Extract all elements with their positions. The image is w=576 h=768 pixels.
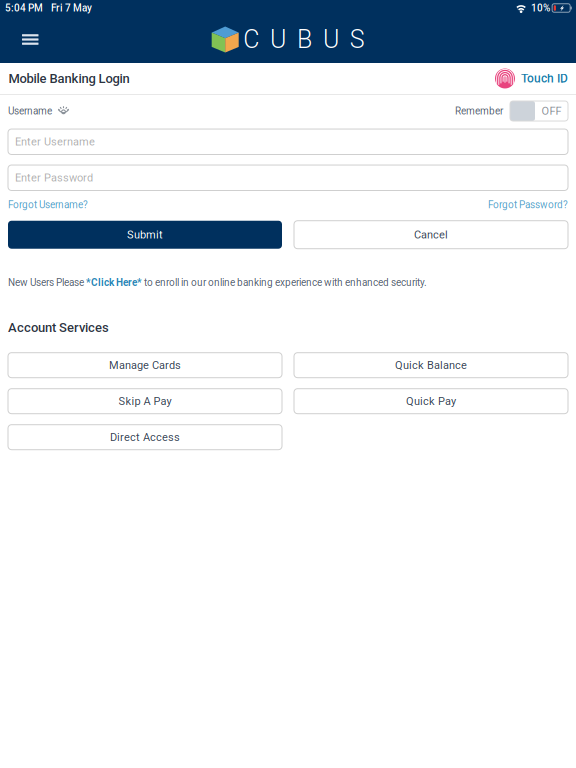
staticText: Account Services <box>8 320 109 335</box>
button[interactable]: Touch ID <box>495 65 568 91</box>
button[interactable]: Manage Cards <box>8 353 282 378</box>
staticText: U <box>323 25 339 54</box>
staticText: Mobile Banking Login <box>8 71 129 86</box>
staticText: Remember <box>455 105 503 117</box>
staticText: Cancel <box>414 228 448 241</box>
staticText: Direct Access <box>110 431 180 444</box>
button[interactable]: Quick Balance <box>294 353 568 378</box>
staticText: Quick Balance <box>395 359 467 372</box>
staticText: Quick Pay <box>406 395 456 408</box>
staticText: C <box>243 25 259 54</box>
staticText: Submit <box>127 228 163 241</box>
staticText: OFF <box>541 105 561 117</box>
button[interactable]: Enter Password <box>8 165 568 190</box>
button[interactable]: Submit <box>8 221 282 249</box>
staticText: Touch ID <box>521 71 568 86</box>
staticText: Forgot Username? <box>8 199 88 211</box>
staticText: 5:04 PM <box>5 2 43 14</box>
staticText: Manage Cards <box>109 359 181 372</box>
button[interactable]: Cancel <box>294 221 568 249</box>
staticText: Enter Password <box>15 171 93 184</box>
staticText: New Users Please <box>8 277 86 288</box>
button[interactable]: Forgot Username? <box>8 199 88 211</box>
button[interactable]: *Click Here* <box>86 277 142 288</box>
staticText: Fri 7 May <box>51 2 92 14</box>
button[interactable]: Forgot Password? <box>488 199 568 211</box>
button[interactable]: Quick Pay <box>294 389 568 414</box>
button[interactable]: Direct Access <box>8 425 282 450</box>
staticText: B <box>297 25 312 54</box>
staticText: *Click Here* <box>86 277 142 288</box>
staticText: U <box>270 25 286 54</box>
button[interactable]: Enter Username <box>8 129 568 154</box>
staticText: S <box>350 25 365 54</box>
staticText: to enroll in our online banking experien… <box>142 277 427 288</box>
staticText: Skip A Pay <box>118 395 171 408</box>
staticText: Username <box>8 105 52 117</box>
staticText: 10% <box>531 2 550 14</box>
staticText: Enter Username <box>15 135 95 148</box>
staticText: Forgot Password? <box>488 199 568 211</box>
button[interactable]: Skip A Pay <box>8 389 282 414</box>
button[interactable]: Menu <box>0 26 52 53</box>
